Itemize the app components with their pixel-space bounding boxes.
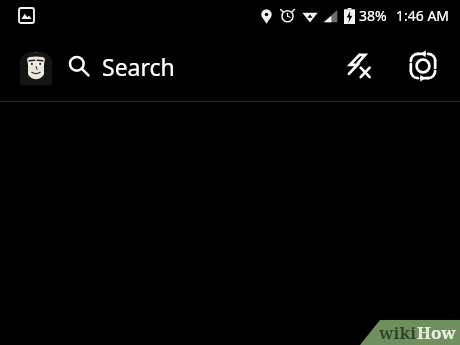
staticText: wiki [379, 321, 417, 344]
button[interactable]: Profile [16, 46, 56, 86]
staticText: How [417, 321, 456, 344]
staticText: Search [102, 51, 175, 82]
button[interactable]: Flash off [338, 45, 380, 87]
button[interactable]: Search [68, 40, 175, 92]
button[interactable]: Flip camera [402, 45, 444, 87]
staticText: 1:46 AM [396, 6, 450, 25]
staticText: 38% [359, 6, 387, 25]
